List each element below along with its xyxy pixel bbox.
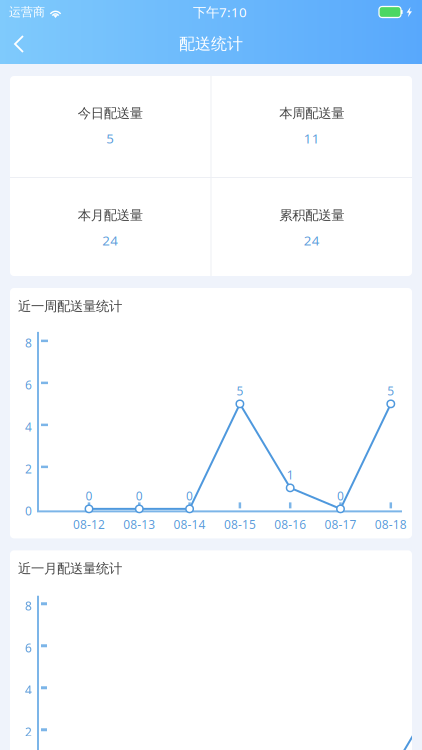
staticText: 8	[25, 598, 32, 614]
staticText: 24	[102, 231, 118, 249]
staticText: 2	[25, 461, 32, 477]
staticText: 0	[337, 488, 344, 504]
staticText: 4	[25, 419, 32, 435]
staticText: 0	[136, 488, 143, 504]
staticText: 08-12	[73, 516, 105, 532]
staticText: 本周配送量	[279, 105, 344, 121]
staticText: 5	[387, 383, 394, 399]
staticText: 2	[25, 724, 32, 740]
staticText: 下午7:10	[193, 3, 247, 21]
staticText: 今日配送量	[78, 105, 143, 121]
staticText: 08-17	[324, 516, 356, 532]
staticText: 24	[304, 231, 320, 249]
staticText: 运营商	[9, 5, 45, 19]
staticText: 0	[186, 488, 193, 504]
staticText: 08-13	[123, 516, 155, 532]
staticText: 近一周配送量统计	[18, 298, 122, 314]
staticText: 0	[85, 488, 92, 504]
staticText: 8	[25, 335, 32, 351]
staticText: 0	[25, 503, 32, 519]
staticText: 近一月配送量统计	[18, 560, 122, 577]
staticText: 5	[236, 383, 243, 399]
staticText: 08-15	[224, 516, 256, 532]
staticText: 11	[304, 129, 320, 147]
staticText: 08-18	[375, 516, 407, 532]
staticText: 累积配送量	[279, 207, 344, 223]
staticText: 配送统计	[179, 34, 243, 54]
staticText: 1	[287, 467, 294, 483]
staticText: 5	[106, 129, 114, 147]
staticText: 6	[25, 377, 32, 393]
staticText: 08-14	[174, 516, 206, 532]
staticText: 6	[25, 640, 32, 656]
button[interactable]: Back	[0, 24, 40, 64]
staticText: 本月配送量	[78, 207, 143, 223]
staticText: 08-16	[274, 516, 306, 532]
staticText: 4	[25, 682, 32, 698]
